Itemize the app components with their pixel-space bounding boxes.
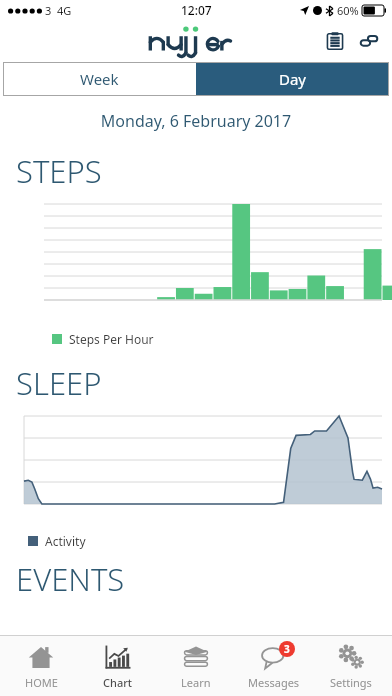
staticText: HOME <box>25 675 58 690</box>
staticText: EVENTS <box>16 558 125 600</box>
staticText: 4G <box>57 3 72 18</box>
staticText: Messages <box>248 675 300 690</box>
button[interactable]: Notes <box>322 28 348 54</box>
staticText: SLEEP <box>16 362 102 404</box>
staticText: 3 <box>284 642 290 656</box>
staticText: 60% <box>337 3 359 18</box>
staticText: STEPS <box>16 150 102 192</box>
button[interactable]: Day <box>196 62 389 96</box>
button[interactable]: 3 <box>237 636 311 696</box>
button[interactable]: Chart <box>81 636 155 696</box>
staticText: Week <box>80 69 119 89</box>
button[interactable]: Learn <box>159 636 233 696</box>
button[interactable]: Week <box>3 62 196 96</box>
staticText: Activity <box>45 533 86 549</box>
staticText: Chart <box>103 675 133 690</box>
staticText: 12:07 <box>181 2 212 18</box>
staticText: Day <box>279 69 307 89</box>
button[interactable]: Link <box>356 28 382 54</box>
staticText: Monday, 6 February 2017 <box>0 110 392 132</box>
staticText: 3 <box>45 3 52 18</box>
staticText: Settings <box>330 675 372 690</box>
button[interactable]: HOME <box>4 636 78 696</box>
staticText: Steps Per Hour <box>69 331 154 347</box>
button[interactable]: Settings <box>314 636 388 696</box>
staticText: Learn <box>181 675 211 690</box>
